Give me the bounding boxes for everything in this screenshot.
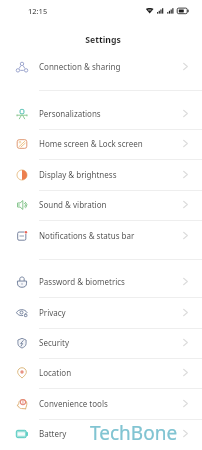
staticText: Connection & sharing: [39, 61, 121, 72]
staticText: 12:15: [28, 6, 48, 16]
button[interactable]: Password & biometrics: [0, 267, 202, 296]
button[interactable]: Personalizations: [0, 99, 202, 128]
staticText: Battery: [39, 428, 67, 439]
staticText: Password & biometrics: [39, 276, 125, 287]
staticText: Display & brightness: [39, 169, 117, 180]
button[interactable]: Display & brightness: [0, 160, 202, 189]
staticText: Convenience tools: [39, 398, 108, 409]
staticText: Security: [39, 337, 70, 348]
button[interactable]: Notifications & status bar: [0, 221, 202, 250]
button[interactable]: Battery: [0, 419, 202, 448]
staticText: Home screen & Lock screen: [39, 138, 143, 149]
button[interactable]: Privacy: [0, 298, 202, 327]
button[interactable]: Location: [0, 358, 202, 387]
staticText: Privacy: [39, 307, 66, 318]
button[interactable]: Security: [0, 328, 202, 357]
staticText: TechBone: [90, 420, 178, 446]
staticText: Notifications & status bar: [39, 230, 135, 241]
staticText: Personalizations: [39, 108, 101, 119]
staticText: Location: [39, 367, 72, 378]
button[interactable]: Home screen & Lock screen: [0, 129, 202, 158]
button[interactable]: Convenience tools: [0, 389, 202, 418]
button[interactable]: Sound & vibration: [0, 190, 202, 219]
staticText: Settings: [85, 34, 121, 46]
staticText: Sound & vibration: [39, 199, 107, 210]
button[interactable]: Connection & sharing: [0, 52, 202, 81]
